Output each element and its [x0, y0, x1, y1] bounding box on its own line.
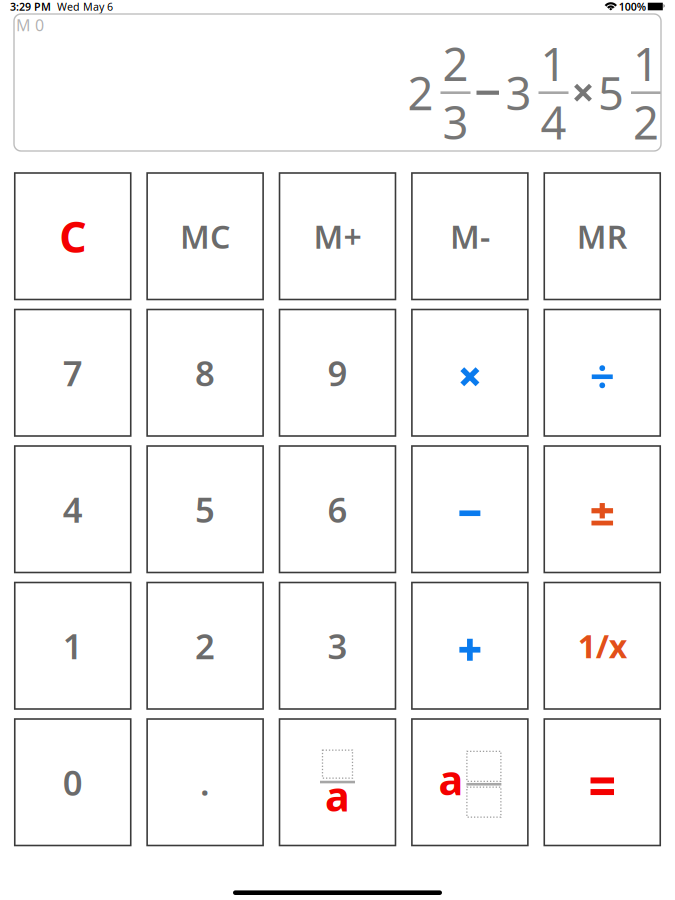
staticText: .: [200, 759, 210, 805]
button[interactable]: Memory recall: [544, 173, 660, 299]
staticText: MC: [180, 215, 230, 257]
staticText: C: [59, 208, 86, 265]
button[interactable]: Equals: [544, 719, 660, 845]
staticText: M+: [313, 215, 361, 257]
staticText: 1/x: [578, 624, 627, 667]
staticText: 3: [442, 92, 468, 152]
staticText: 2: [442, 33, 468, 93]
button[interactable]: 8: [147, 309, 263, 436]
staticText: 3: [505, 63, 531, 123]
staticText: 5: [195, 486, 215, 532]
button[interactable]: 0: [15, 719, 131, 845]
button[interactable]: Divide: [544, 309, 660, 436]
staticText: a: [438, 752, 463, 807]
staticText: 2: [195, 623, 215, 669]
staticText: 1: [633, 33, 659, 93]
button[interactable]: 4: [15, 446, 131, 572]
button[interactable]: 3: [279, 582, 395, 709]
staticText: M 0: [16, 14, 44, 36]
button[interactable]: Mixed fraction: [412, 719, 528, 845]
staticText: MR: [577, 215, 628, 257]
staticText: 3:29 PM: [10, 0, 51, 14]
staticText: 2: [633, 92, 659, 152]
staticText: 1: [63, 623, 83, 669]
staticText: 8: [195, 350, 215, 396]
staticText: 7: [63, 350, 83, 396]
staticText: Wed May 6: [51, 0, 113, 14]
staticText: 3: [327, 623, 347, 669]
button[interactable]: 1: [15, 582, 131, 709]
button[interactable]: Minus: [412, 446, 528, 572]
button[interactable]: Memory clear: [147, 173, 263, 299]
button[interactable]: 9: [279, 309, 395, 436]
button[interactable]: 5: [147, 446, 263, 572]
button[interactable]: 6: [279, 446, 395, 572]
staticText: 4: [63, 486, 83, 532]
button[interactable]: Plus: [412, 582, 528, 709]
staticText: M-: [450, 215, 490, 257]
staticText: 6: [327, 486, 347, 532]
button[interactable]: Memory subtract: [412, 173, 528, 299]
button[interactable]: 7: [15, 309, 131, 436]
button[interactable]: Fraction: [279, 719, 395, 845]
button[interactable]: Multiply: [412, 309, 528, 436]
button[interactable]: Clear: [15, 173, 131, 299]
staticText: 9: [327, 350, 347, 396]
staticText: 0: [63, 759, 83, 805]
button[interactable]: Decimal point: [147, 719, 263, 845]
staticText: 1: [540, 33, 566, 93]
button[interactable]: Reciprocal: [544, 582, 660, 709]
staticText: 5: [598, 63, 624, 123]
button[interactable]: 2: [147, 582, 263, 709]
staticText: 4: [540, 92, 566, 152]
button[interactable]: Plus minus: [544, 446, 660, 572]
staticText: a: [325, 768, 350, 823]
staticText: 2: [407, 63, 433, 123]
button[interactable]: Memory add: [279, 173, 395, 299]
staticText: 100%: [619, 0, 646, 14]
